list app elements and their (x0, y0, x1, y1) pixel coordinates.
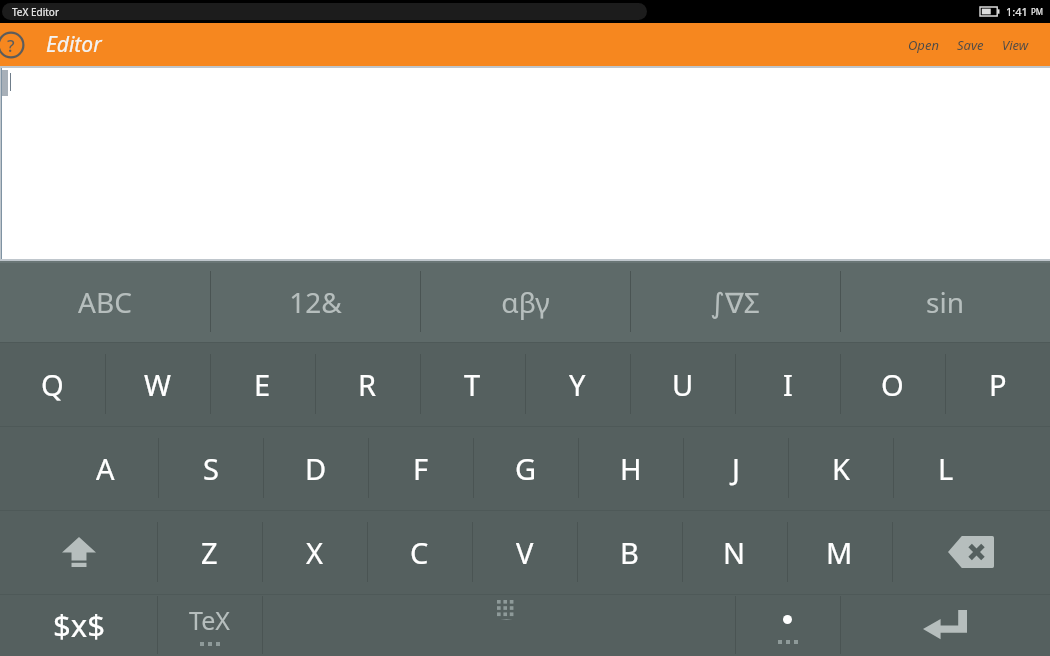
staticText: C (410, 533, 429, 572)
staticText: I (783, 365, 793, 404)
button[interactable]: R (315, 342, 420, 426)
staticText: W (144, 365, 171, 404)
button[interactable]: Space (262, 594, 735, 656)
staticText: G (515, 449, 537, 488)
button[interactable]: F (368, 426, 473, 510)
staticText: P (989, 365, 1007, 404)
button[interactable]: V (472, 510, 577, 594)
button[interactable]: I (735, 342, 840, 426)
staticText: TeX (189, 603, 230, 637)
button[interactable]: M (787, 510, 892, 594)
button[interactable]: P (945, 342, 1050, 426)
button[interactable]: J (683, 426, 788, 510)
button[interactable]: Shift (0, 510, 157, 594)
button[interactable]: Enter (840, 594, 1050, 656)
button[interactable]: K (788, 426, 893, 510)
button[interactable]: A (52, 426, 158, 510)
staticText: R (358, 365, 377, 404)
button[interactable]: T (420, 342, 525, 426)
button[interactable]: S (158, 426, 263, 510)
staticText: Open (908, 36, 939, 54)
staticText: ABC (78, 283, 132, 321)
button[interactable]: U (630, 342, 735, 426)
staticText: αβγ (501, 283, 550, 321)
staticText: K (832, 449, 850, 488)
staticText: F (413, 449, 429, 488)
button[interactable]: B (577, 510, 682, 594)
button[interactable]: 12& (210, 261, 420, 342)
button[interactable]: H (578, 426, 683, 510)
staticText: ∫∇Σ (710, 283, 760, 321)
staticText: A (96, 449, 115, 488)
button[interactable] (735, 594, 840, 656)
staticText: TeX Editor (12, 5, 60, 19)
button[interactable]: E (210, 342, 315, 426)
button[interactable]: Backspace (892, 510, 1050, 594)
button[interactable]: N (682, 510, 787, 594)
staticText: Q (41, 365, 64, 404)
staticText: T (464, 365, 481, 404)
staticText: B (620, 533, 639, 572)
button[interactable] (1, 68, 1050, 259)
staticText: M (826, 533, 853, 572)
staticText: O (881, 365, 904, 404)
staticText: E (254, 365, 271, 404)
button[interactable]: αβγ (420, 261, 630, 342)
button[interactable]: C (367, 510, 472, 594)
staticText: U (672, 365, 694, 404)
staticText: Z (201, 533, 218, 572)
button[interactable]: O (840, 342, 945, 426)
staticText: J (732, 449, 740, 488)
staticText: Save (957, 36, 984, 54)
staticText: X (306, 533, 323, 572)
button[interactable]: ∫∇Σ (630, 261, 840, 342)
button[interactable]: Save (948, 28, 993, 62)
staticText: H (620, 449, 642, 488)
button[interactable]: Open (899, 28, 948, 62)
button[interactable]: sin (840, 261, 1050, 342)
staticText: View (1002, 36, 1029, 54)
staticText: Y (569, 365, 586, 404)
staticText: $x$ (53, 604, 105, 646)
button[interactable]: View (993, 28, 1038, 62)
button[interactable]: Help (0, 25, 31, 65)
staticText: D (305, 449, 327, 488)
staticText: 12& (289, 283, 342, 321)
button[interactable]: G (473, 426, 578, 510)
button[interactable]: $x$ (0, 594, 157, 656)
button[interactable]: TeX (157, 594, 262, 656)
button[interactable]: L (893, 426, 998, 510)
button[interactable]: X (262, 510, 367, 594)
staticText: PM (1031, 6, 1044, 17)
button[interactable]: Y (525, 342, 630, 426)
staticText: Editor (46, 30, 102, 59)
button[interactable]: Z (157, 510, 262, 594)
staticText: S (203, 449, 219, 488)
button[interactable]: D (263, 426, 368, 510)
button[interactable]: Q (0, 342, 105, 426)
staticText: 1:41 (1006, 4, 1028, 19)
staticText: V (516, 533, 534, 572)
staticText: sin (926, 283, 964, 321)
staticText: N (723, 533, 746, 572)
button[interactable]: ABC (0, 261, 210, 342)
staticText: ? (7, 34, 15, 57)
other: Hide keyboard (497, 600, 516, 620)
button[interactable]: W (105, 342, 210, 426)
staticText: L (938, 449, 954, 488)
